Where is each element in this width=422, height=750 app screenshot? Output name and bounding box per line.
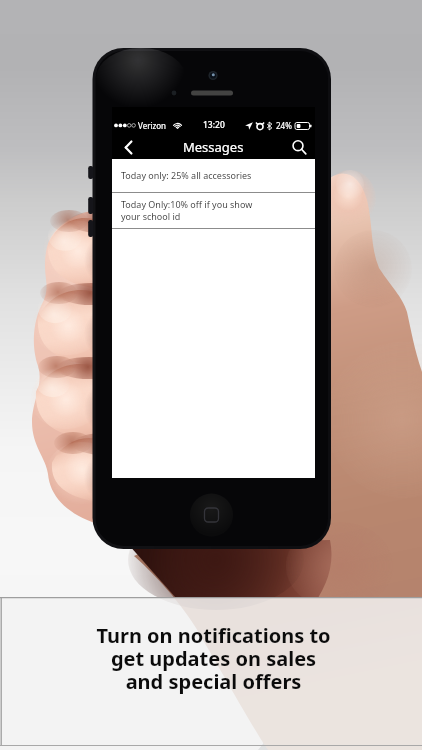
- button[interactable]: Search: [283, 135, 315, 159]
- staticText: Messages: [183, 138, 244, 156]
- staticText: Today Only:10% off if you show your scho…: [121, 198, 253, 222]
- button[interactable]: Today Only:10% off if you show your scho…: [112, 193, 315, 228]
- staticText: 24%: [276, 120, 292, 131]
- staticText: Verizon: [138, 120, 167, 131]
- staticText: Today only: 25% all accessories: [121, 169, 252, 181]
- button[interactable]: Today only: 25% all accessories: [112, 159, 315, 192]
- staticText: 13:20: [203, 119, 225, 131]
- button[interactable]: Back: [112, 135, 144, 159]
- staticText: Turn on notifications to get updates on …: [96, 622, 331, 695]
